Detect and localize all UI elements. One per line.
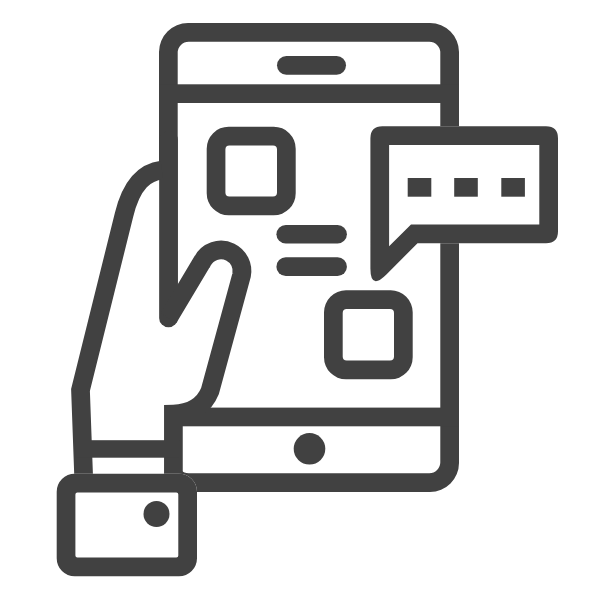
button[interactable]: Mobile app interaction illustration	[0, 0, 600, 600]
